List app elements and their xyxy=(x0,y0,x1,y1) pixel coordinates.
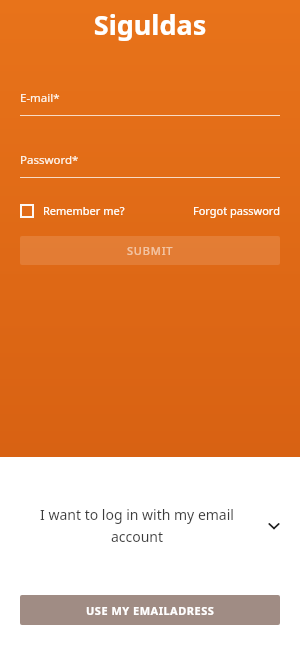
staticText: Password* xyxy=(20,152,79,168)
button[interactable]: E-mail* xyxy=(20,90,280,116)
button[interactable]: USE MY EMAILADRESS xyxy=(20,595,280,625)
staticText: E-mail* xyxy=(20,90,60,106)
button[interactable]: Password* xyxy=(20,152,280,178)
button[interactable]: Remember me? xyxy=(20,203,129,218)
staticText: Siguldas xyxy=(0,6,300,43)
other: Expand xyxy=(264,516,284,536)
staticText: Remember me? xyxy=(43,203,125,218)
button[interactable]: I want to log in with my email account xyxy=(0,505,300,546)
staticText: USE MY EMAILADRESS xyxy=(86,603,215,618)
staticText: Forgot password xyxy=(193,203,280,218)
button[interactable]: Forgot password xyxy=(193,203,280,218)
button[interactable]: SUBMIT xyxy=(20,236,280,265)
staticText: SUBMIT xyxy=(127,243,174,258)
staticText: I want to log in with my email account xyxy=(16,505,258,546)
